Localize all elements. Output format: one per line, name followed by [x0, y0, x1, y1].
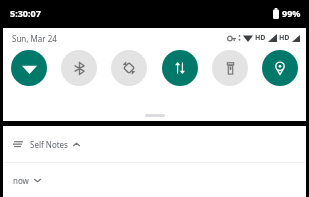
staticText: 99%	[282, 7, 301, 19]
staticText: 5:30:07	[10, 7, 41, 19]
staticText: HD	[255, 33, 266, 43]
button[interactable]: Wi-Fi	[11, 50, 47, 86]
button[interactable]: Auto rotate	[111, 50, 147, 86]
button[interactable]: now	[3, 163, 306, 197]
staticText: Sun, Mar 24	[12, 33, 57, 44]
button[interactable]: Location	[262, 50, 298, 86]
button[interactable]: Flashlight	[212, 50, 248, 86]
staticText: Self Notes	[30, 139, 68, 150]
staticText: HD	[279, 33, 290, 43]
button[interactable]: Mobile data	[162, 50, 198, 86]
button[interactable]: Self Notes	[3, 126, 306, 162]
staticText: now	[13, 175, 29, 186]
button[interactable]: Bluetooth	[61, 50, 97, 86]
